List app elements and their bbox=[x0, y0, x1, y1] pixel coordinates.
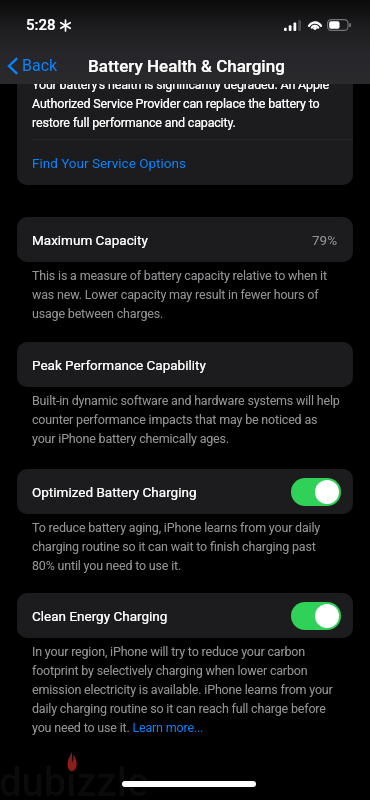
staticText: dubizzle bbox=[0, 759, 149, 800]
staticText: This is a measure of battery capacity re… bbox=[32, 265, 340, 322]
staticText: Your battery's health is significantly d… bbox=[32, 84, 340, 131]
staticText: Optimized Battery Charging bbox=[32, 484, 197, 500]
staticText: Built-in dynamic software and hardware s… bbox=[32, 390, 340, 447]
button[interactable]: Clean Energy Charging bbox=[17, 593, 353, 638]
staticText: Back bbox=[22, 56, 58, 75]
staticText: Find Your Service Options bbox=[32, 155, 186, 171]
staticText: To reduce battery aging, iPhone learns f… bbox=[32, 517, 340, 574]
staticText: Peak Performance Capability bbox=[32, 357, 206, 373]
other: Clean Energy Charging toggle, on bbox=[291, 602, 341, 630]
other: Optimized Battery Charging toggle, on bbox=[291, 478, 341, 506]
button[interactable]: Back bbox=[0, 56, 66, 75]
button[interactable]: Maximum Capacity bbox=[17, 217, 353, 262]
button[interactable]: Optimized Battery Charging bbox=[17, 469, 353, 514]
button[interactable]: Find Your Service Options bbox=[17, 140, 353, 185]
staticText: Battery Health & Charging bbox=[88, 56, 285, 76]
staticText: 5:28 bbox=[26, 16, 56, 34]
staticText: 79% bbox=[312, 232, 338, 248]
staticText: Maximum Capacity bbox=[32, 232, 148, 248]
button[interactable]: Peak Performance Capability bbox=[17, 342, 353, 387]
staticText: Clean Energy Charging bbox=[32, 608, 168, 624]
staticText: In your region, iPhone will try to reduc… bbox=[32, 641, 340, 736]
